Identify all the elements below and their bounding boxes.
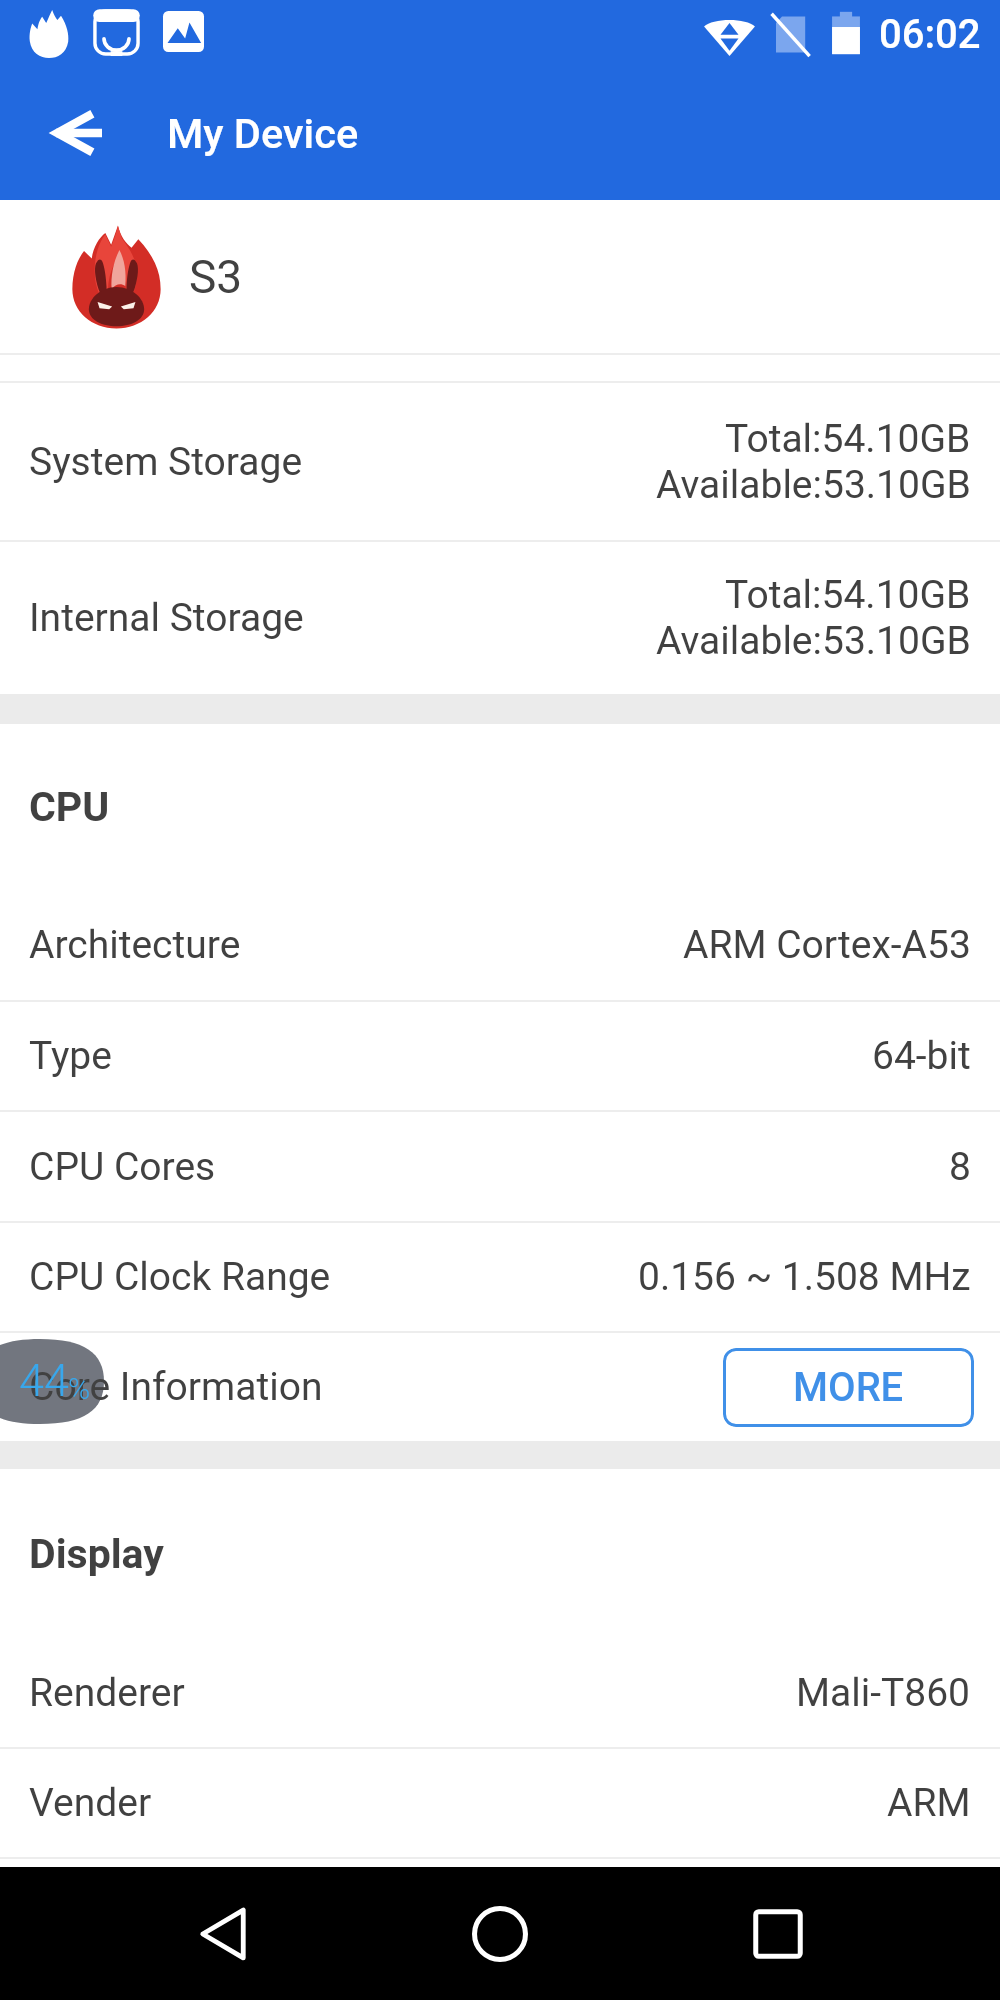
button[interactable]: Back bbox=[28, 90, 128, 190]
staticText: ARM bbox=[887, 1780, 971, 1826]
staticText: CPU Clock Range bbox=[29, 1254, 331, 1300]
staticText: MORE bbox=[793, 1364, 904, 1411]
button[interactable]: CPU Cores bbox=[0, 1112, 1000, 1221]
button[interactable]: MORE bbox=[723, 1348, 974, 1427]
staticText: Core Information bbox=[29, 1364, 323, 1410]
button[interactable]: Recent apps bbox=[723, 1879, 833, 1989]
staticText: S3 bbox=[189, 250, 243, 304]
button[interactable]: Internal Storage bbox=[0, 542, 1000, 694]
staticText: 64-bit bbox=[872, 1033, 971, 1079]
staticText: Renderer bbox=[29, 1670, 185, 1716]
staticText: My Device bbox=[167, 109, 359, 158]
staticText: CPU bbox=[29, 783, 110, 831]
staticText: % bbox=[68, 1371, 91, 1406]
staticText: CPU Cores bbox=[29, 1144, 216, 1190]
staticText: Available:53.10GB bbox=[656, 618, 971, 664]
button[interactable]: Architecture bbox=[0, 890, 1000, 1000]
staticText: Internal Storage bbox=[29, 595, 304, 641]
staticText: 44 bbox=[19, 1354, 69, 1407]
button[interactable]: System Storage bbox=[0, 383, 1000, 540]
button[interactable]: Core Information bbox=[0, 1333, 1000, 1441]
staticText: Total:54.10GB bbox=[725, 416, 971, 462]
staticText: ARM Cortex-A53 bbox=[683, 922, 971, 968]
button[interactable]: Back bbox=[168, 1879, 278, 1989]
staticText: 8 bbox=[949, 1144, 971, 1190]
button[interactable]: CPU Clock Range bbox=[0, 1223, 1000, 1331]
staticText: Vender bbox=[29, 1780, 152, 1826]
button[interactable]: Vender bbox=[0, 1749, 1000, 1857]
button[interactable]: Type bbox=[0, 1002, 1000, 1110]
staticText: Total:54.10GB bbox=[725, 572, 971, 618]
button[interactable]: Renderer bbox=[0, 1639, 1000, 1747]
staticText: Architecture bbox=[29, 922, 241, 968]
staticText: 06:02 bbox=[879, 11, 981, 58]
button[interactable]: Home bbox=[445, 1879, 555, 1989]
staticText: Display bbox=[29, 1530, 164, 1578]
staticText: Type bbox=[29, 1033, 112, 1079]
staticText: Mali-T860 bbox=[796, 1670, 971, 1716]
staticText: Available:53.10GB bbox=[656, 462, 971, 508]
staticText: 0.156 ~ 1.508 MHz bbox=[638, 1254, 971, 1300]
staticText: System Storage bbox=[29, 439, 303, 485]
button[interactable]: CPU usage 44 percent bbox=[0, 1339, 104, 1424]
button[interactable]: S3 bbox=[0, 200, 1000, 353]
